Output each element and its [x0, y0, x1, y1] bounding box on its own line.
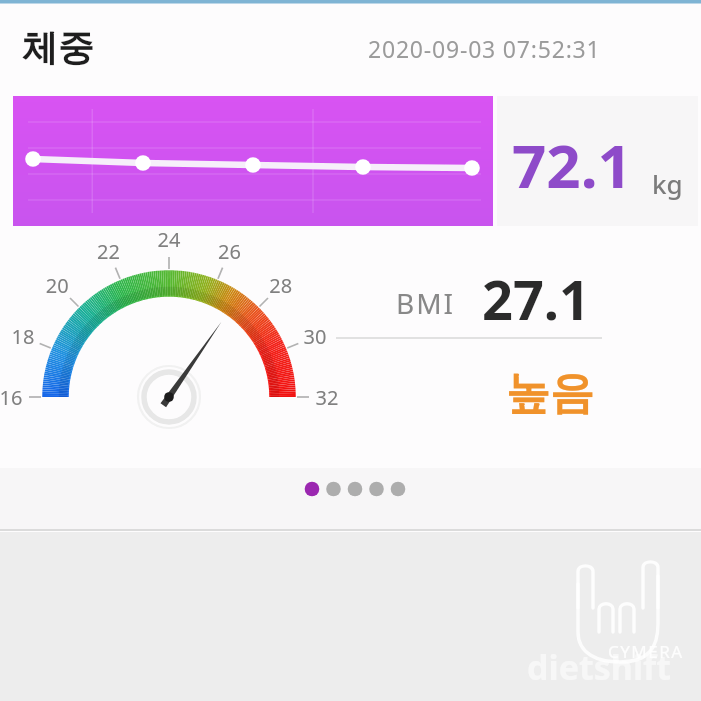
button[interactable]: Weight and BMI summary card: [0, 0, 701, 701]
